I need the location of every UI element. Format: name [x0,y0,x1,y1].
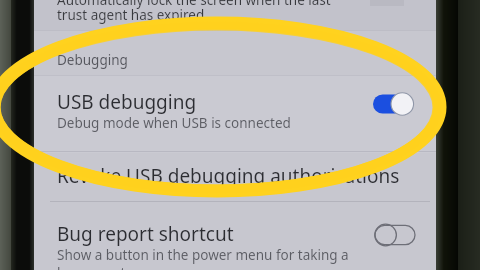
staticText: bug report [57,264,126,270]
button[interactable]: Bug report shortcut switch, off [375,223,415,247]
staticText: USB debugging [57,89,197,115]
staticText: Bug report shortcut [57,221,234,247]
button[interactable]: Revoke USB debugging authorisations [34,155,436,197]
staticText: trust agent has expired [57,6,205,24]
staticText: Revoke USB debugging authorisations [57,163,400,189]
button[interactable]: USB debugging switch, on [373,92,413,116]
staticText: Automatically lock the screen when the l… [57,0,331,9]
staticText: Show a button in the power menu for taki… [57,246,349,264]
staticText: Debug mode when USB is connected [57,114,291,132]
button[interactable]: USB debugging [34,80,436,148]
staticText: Debugging [57,51,128,69]
button[interactable]: Bug report shortcut [34,210,436,270]
